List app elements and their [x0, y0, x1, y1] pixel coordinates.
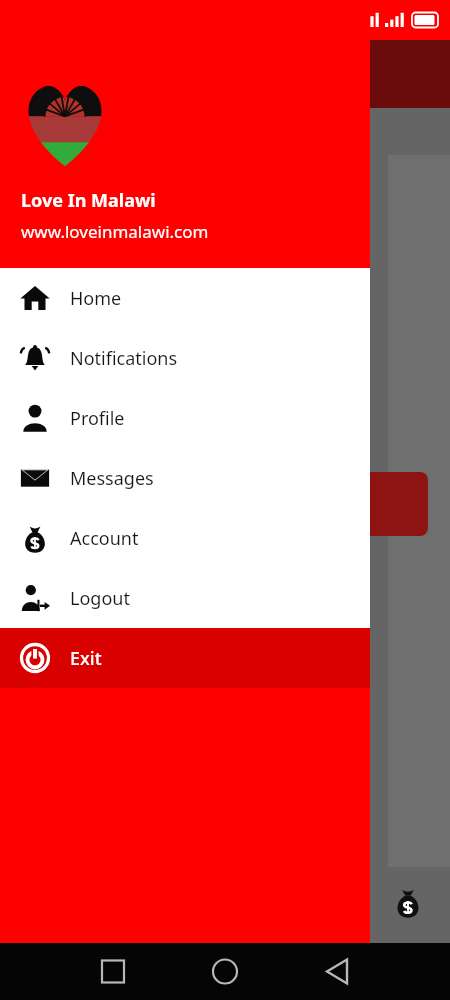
staticText: Notifications [70, 346, 178, 371]
staticText: Love In Malawi [21, 188, 156, 213]
button[interactable]: Profile [0, 388, 370, 448]
staticText: Account [70, 526, 139, 551]
button[interactable]: Notifications [0, 328, 370, 388]
staticText: www.loveinmalawi.com [21, 220, 209, 243]
button[interactable]: Home [0, 268, 370, 328]
button[interactable]: Messages [0, 448, 370, 508]
button[interactable]: Logout [0, 568, 370, 628]
staticText: Exit [70, 646, 102, 671]
staticText: Logout [70, 586, 130, 611]
staticText: Messages [70, 466, 154, 491]
staticText: Home [70, 286, 122, 311]
button[interactable]: Exit [0, 628, 370, 688]
staticText: Profile [70, 406, 125, 431]
button[interactable]: Account [0, 508, 370, 568]
button[interactable]: Account [392, 886, 424, 918]
